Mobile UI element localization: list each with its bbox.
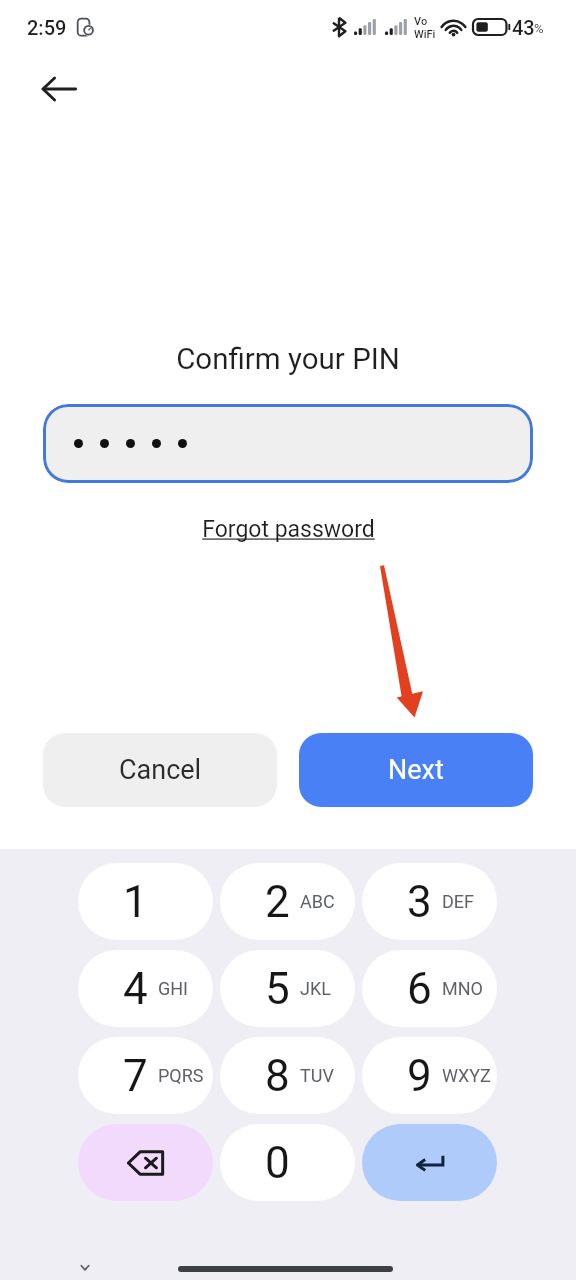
button[interactable]: Back: [36, 66, 82, 112]
staticText: 2:59: [27, 16, 67, 39]
button[interactable]: Forgot password: [200, 513, 376, 545]
staticText: JKL: [300, 978, 331, 999]
staticText: 2: [265, 876, 290, 928]
staticText: GHI: [158, 978, 188, 999]
staticText: WiFi: [414, 28, 436, 41]
staticText: TUV: [300, 1065, 334, 1086]
button[interactable]: 9: [362, 1037, 497, 1114]
staticText: Vo: [414, 15, 428, 28]
button[interactable]: Cancel: [43, 733, 277, 807]
staticText: 8: [265, 1050, 290, 1102]
staticText: Confirm your PIN: [0, 342, 576, 377]
button[interactable]: 8: [220, 1037, 355, 1114]
staticText: ABC: [300, 891, 335, 912]
button[interactable]: 7: [78, 1037, 213, 1114]
button[interactable]: 2: [220, 863, 355, 940]
staticText: 3: [407, 876, 432, 928]
button[interactable]: Enter: [362, 1124, 497, 1201]
staticText: PQRS: [158, 1065, 204, 1086]
staticText: Forgot password: [202, 516, 375, 543]
staticText: Cancel: [119, 754, 202, 786]
staticText: 9: [407, 1050, 432, 1102]
staticText: WXYZ: [442, 1065, 491, 1086]
staticText: 4: [123, 963, 148, 1015]
button[interactable]: 0: [220, 1124, 355, 1201]
button[interactable]: 6: [362, 950, 497, 1027]
staticText: Next: [388, 754, 444, 786]
staticText: DEF: [442, 891, 474, 912]
button[interactable]: 3: [362, 863, 497, 940]
button[interactable]: 4: [78, 950, 213, 1027]
staticText: MNO: [442, 978, 483, 999]
staticText: 1: [123, 876, 148, 928]
staticText: 7: [123, 1050, 148, 1102]
button[interactable]: 1: [78, 863, 213, 940]
staticText: 0: [265, 1137, 290, 1189]
button[interactable]: Next: [299, 733, 533, 807]
staticText: 5: [265, 963, 290, 1015]
staticText: 43: [512, 16, 535, 39]
button[interactable]: 5: [220, 950, 355, 1027]
button[interactable]: Backspace: [78, 1124, 213, 1201]
button[interactable]: [43, 404, 533, 483]
staticText: 6: [407, 963, 432, 1015]
staticText: %: [534, 21, 544, 36]
